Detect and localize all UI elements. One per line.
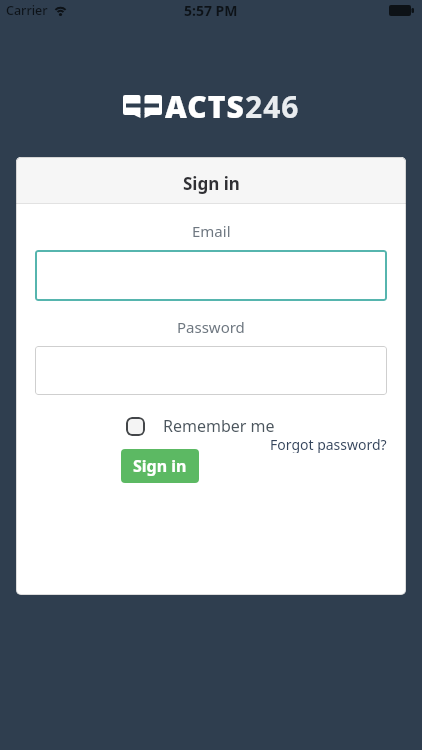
button[interactable] — [35, 250, 387, 301]
staticText: Email — [192, 221, 231, 241]
staticText: 246 — [245, 86, 300, 127]
staticText: Sign in — [133, 455, 187, 477]
staticText: 5:57 PM — [184, 1, 238, 20]
staticText: Remember me — [163, 415, 275, 437]
staticText: Sign in — [183, 172, 240, 195]
staticText: Password — [177, 317, 245, 337]
button[interactable]: Remember me — [126, 415, 275, 437]
button[interactable]: Sign in — [121, 449, 199, 483]
button[interactable] — [35, 346, 387, 395]
staticText: Carrier — [6, 2, 48, 19]
staticText: ACTS — [165, 86, 245, 127]
button[interactable]: Forgot password? — [270, 435, 387, 453]
